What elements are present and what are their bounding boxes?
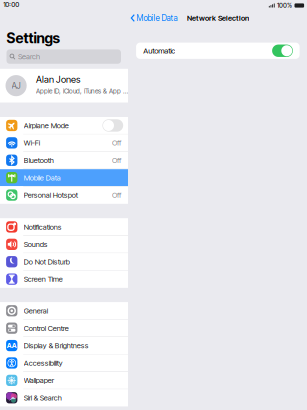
button[interactable]: Automatic [128,43,307,59]
staticText: Settings [7,29,60,46]
staticText: Off [112,138,121,147]
button[interactable]: Mobile Data [128,11,177,25]
button[interactable]: Control Centre [0,320,128,337]
button[interactable]: Personal Hotspot [0,187,128,203]
staticText: 100% [277,2,292,9]
button[interactable]: Wi-Fi [0,134,128,151]
button[interactable]: AJ [0,69,128,102]
staticText: Notifications [24,222,62,231]
staticText: Personal Hotspot [24,191,78,200]
staticText: Display & Brightness [24,341,89,350]
button[interactable]: Accessibility [0,354,128,371]
button[interactable]: Wallpaper [0,372,128,389]
staticText: Mobile Data [136,13,177,23]
staticText: Control Centre [24,324,69,333]
staticText: Wi-Fi [24,138,40,147]
button[interactable]: Search [0,49,128,64]
button[interactable]: Screen Time [0,271,128,288]
button[interactable]: Do Not Disturb [0,253,128,270]
staticText: Network Selection [187,14,249,22]
staticText: Wallpaper [24,376,54,385]
button[interactable]: General [0,302,128,319]
staticText: Automatic [143,46,175,55]
staticText: Airplane Mode [24,121,69,130]
staticText: AA [7,341,17,350]
staticText: General [24,306,48,315]
staticText: Bluetooth [24,156,54,165]
staticText: Accessibility [24,358,63,367]
staticText: 10:00 [3,0,19,9]
staticText: Screen Time [24,275,63,284]
staticText: Off [112,191,121,200]
button[interactable]: Airplane Mode [0,117,128,134]
staticText: Off [112,156,121,165]
staticText: Search [18,52,40,61]
button[interactable]: Sounds [0,236,128,253]
button[interactable]: Siri & Search [0,389,128,406]
staticText: Apple ID, iCloud, iTunes & App St... [36,87,128,95]
staticText: Siri & Search [24,393,62,402]
button[interactable]: Notifications [0,218,128,235]
staticText: AJ [12,80,21,91]
staticText: Mobile Data [24,173,61,182]
button[interactable]: Bluetooth [0,152,128,169]
button[interactable]: AA [0,337,128,354]
staticText: Sounds [24,240,48,249]
staticText: Alan Jones [36,74,80,85]
button[interactable]: Mobile Data [0,169,128,186]
staticText: Do Not Disturb [24,257,70,266]
